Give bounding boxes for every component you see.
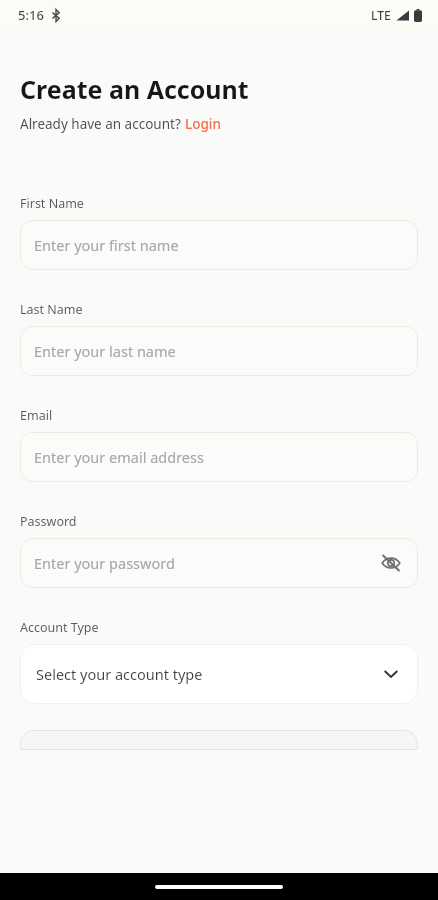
staticText: Email	[20, 407, 53, 424]
button[interactable]: Enter your last name	[20, 326, 418, 376]
button[interactable]: Enter your password	[20, 538, 418, 588]
staticText: Account Type	[20, 619, 99, 636]
staticText: Enter your email address	[34, 447, 404, 467]
other: Open account type menu	[380, 663, 402, 685]
staticText: Already have an account?	[20, 115, 185, 133]
staticText: 5:16	[18, 6, 44, 24]
staticText: LTE	[371, 7, 391, 23]
staticText: Last Name	[20, 301, 83, 318]
staticText: Create an Account	[20, 72, 249, 106]
button[interactable]: Enter your first name	[20, 220, 418, 270]
staticText: Enter your first name	[34, 235, 404, 255]
staticText: First Name	[20, 195, 84, 212]
staticText: Login	[185, 115, 221, 133]
button[interactable]	[20, 730, 418, 750]
staticText: Enter your last name	[34, 341, 404, 361]
button[interactable]: Show password	[378, 550, 404, 576]
staticText: Enter your password	[34, 553, 378, 573]
staticText: Select your account type	[36, 664, 380, 684]
button[interactable]: Login	[185, 115, 221, 133]
button[interactable]: Enter your email address	[20, 432, 418, 482]
button[interactable]: Select your account type	[20, 644, 418, 704]
staticText: Password	[20, 513, 77, 530]
